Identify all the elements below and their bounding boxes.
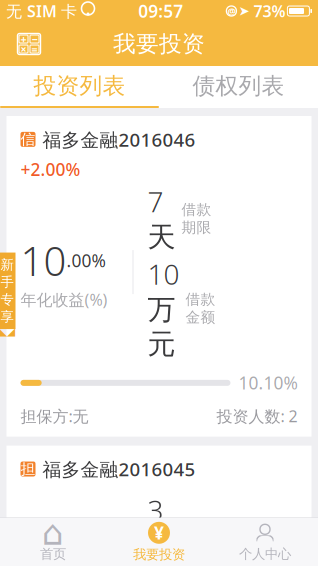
staticText: 09:57 [138,0,183,22]
staticText: ➤ [238,3,249,18]
staticText: ¥ [154,521,164,544]
staticText: ⌂ [42,513,64,552]
staticText: 7天 [147,183,175,254]
staticText: = [31,42,37,56]
button[interactable]: ¥ [106,518,212,566]
button[interactable]: 担 [6,446,311,566]
button[interactable]: 债权列表 [159,66,318,108]
staticText: 担 [20,460,35,478]
staticText: 年化收益(%) [20,289,107,310]
staticText: 借款金额 [185,290,215,326]
button[interactable]: 个人中心 [212,518,318,566]
staticText: 借款期限 [181,526,211,562]
staticText: 信 [20,130,35,148]
button[interactable]: 信 [6,116,311,437]
staticText: 债权列表 [192,72,284,100]
button[interactable]: 投资列表 [0,66,159,108]
staticText: 无 SIM 卡 [6,0,77,22]
staticText: 个人中心 [239,546,291,562]
staticText: 10万元 [147,255,179,361]
staticText: 新 [0,257,13,273]
staticText: 3个月 [147,491,175,566]
staticText: 投资人数: 2 [216,405,297,427]
staticText: 享 [0,309,13,325]
staticText [236,6,238,16]
staticText: .00% [66,249,105,272]
staticText: @ [227,5,235,17]
staticText: 73% [249,0,285,22]
staticText: ◣ [0,325,7,338]
staticText: 专 [0,291,13,308]
staticText [285,6,287,16]
button[interactable]: 计算器 [12,27,46,61]
staticText: 10 [20,234,66,287]
staticText: ◢ [7,325,15,338]
staticText [77,1,81,21]
staticText: 我要投资 [133,546,185,563]
staticText: 担保方:无 [20,405,88,427]
staticText: 投资列表 [33,72,125,100]
staticText: − [31,32,37,46]
staticText: × [20,42,26,56]
staticText: 首页 [40,546,66,562]
staticText: + [20,32,26,46]
staticText: 手 [0,274,13,290]
staticText: 福多金融2016045 [42,457,195,481]
staticText: 借款期限 [181,201,211,237]
staticText: 10.10% [238,371,297,394]
staticText: +2.00% [20,158,80,181]
button[interactable]: ⌂ [0,518,106,566]
staticText: 我要投资 [113,30,205,58]
staticText: 福多金融2016046 [42,127,195,152]
